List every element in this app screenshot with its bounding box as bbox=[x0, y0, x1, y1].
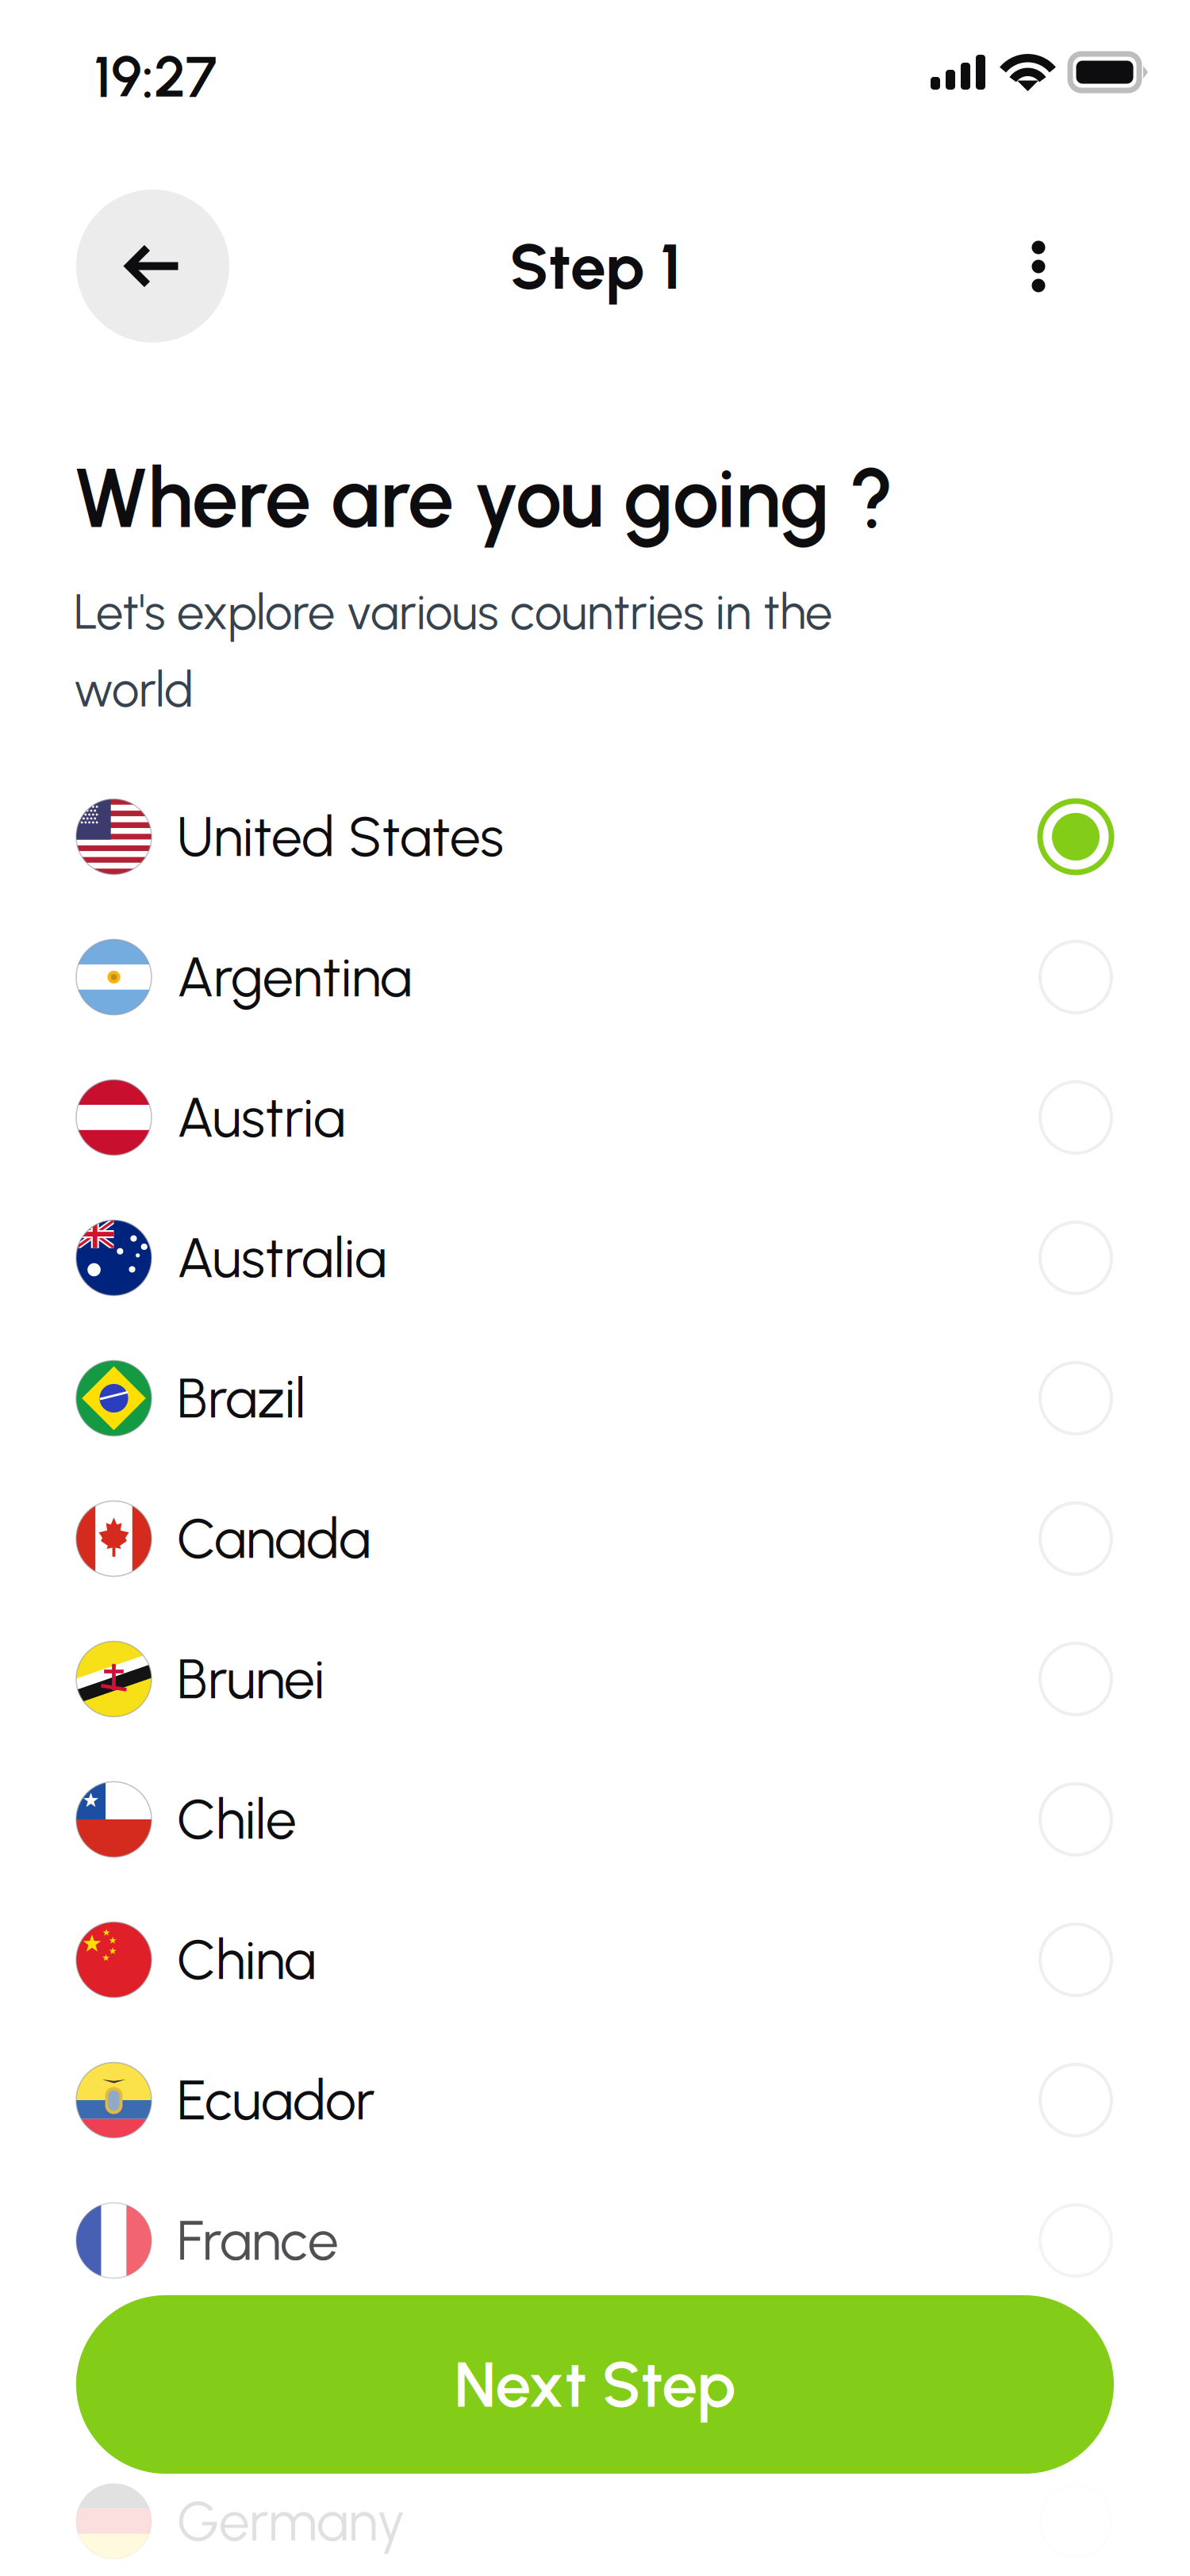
staticText: Next Step bbox=[454, 2346, 736, 2423]
button[interactable]: Austria bbox=[0, 1070, 1190, 1165]
staticText: Brazil bbox=[177, 1365, 305, 1431]
button[interactable]: More options bbox=[995, 215, 1082, 318]
button[interactable]: China bbox=[0, 1912, 1190, 2007]
staticText: China bbox=[177, 1927, 316, 1993]
button[interactable]: Argentina bbox=[0, 930, 1190, 1025]
staticText: Ecuador bbox=[177, 2067, 375, 2133]
staticText: Let's explore various countries in the w… bbox=[74, 583, 832, 719]
button[interactable]: Canada bbox=[0, 1491, 1190, 1586]
staticText: Chile bbox=[177, 1786, 297, 1852]
button[interactable]: Australia bbox=[0, 1210, 1190, 1305]
staticText: Australia bbox=[177, 1225, 386, 1291]
button[interactable]: Back bbox=[76, 190, 229, 343]
staticText: France bbox=[177, 2208, 339, 2274]
button[interactable]: Georgia bbox=[0, 2333, 1190, 2428]
staticText: Germany bbox=[177, 2488, 405, 2554]
staticText: 19:27 bbox=[94, 43, 217, 111]
staticText: Canada bbox=[177, 1506, 370, 1572]
button[interactable]: Brazil bbox=[0, 1351, 1190, 1446]
button[interactable]: United States bbox=[0, 789, 1190, 884]
staticText: Austria bbox=[177, 1084, 345, 1150]
button[interactable]: Brunei bbox=[0, 1631, 1190, 1727]
staticText: United States bbox=[177, 804, 504, 870]
staticText: Argentina bbox=[177, 944, 412, 1010]
button[interactable]: Ecuador bbox=[0, 2053, 1190, 2148]
staticText: Brunei bbox=[177, 1646, 324, 1712]
button[interactable]: Chile bbox=[0, 1772, 1190, 1867]
button[interactable]: France bbox=[0, 2193, 1190, 2288]
button[interactable]: Next Step bbox=[76, 2295, 1114, 2474]
button[interactable]: Germany bbox=[0, 2474, 1190, 2569]
staticText: Where are you going ? bbox=[74, 449, 894, 548]
staticText: Step 1 bbox=[509, 228, 681, 305]
